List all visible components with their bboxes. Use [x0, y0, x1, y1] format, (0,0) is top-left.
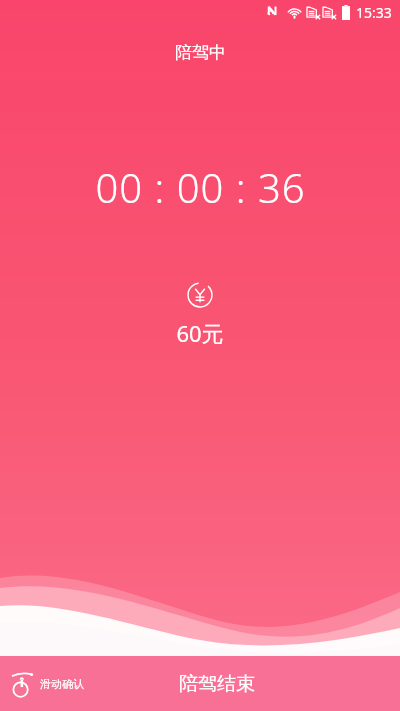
- staticText: 00 : 00 : 36: [95, 160, 306, 214]
- button[interactable]: 滑动确认: [0, 662, 94, 706]
- other: 滑动确认: [10, 670, 34, 698]
- staticText: 滑动确认: [40, 677, 84, 691]
- button[interactable]: 陪驾结束: [94, 656, 340, 711]
- staticText: 陪驾中: [175, 42, 226, 63]
- staticText: 陪驾结束: [179, 672, 255, 696]
- staticText: 60元: [176, 318, 224, 348]
- staticText: 15:33: [356, 3, 392, 22]
